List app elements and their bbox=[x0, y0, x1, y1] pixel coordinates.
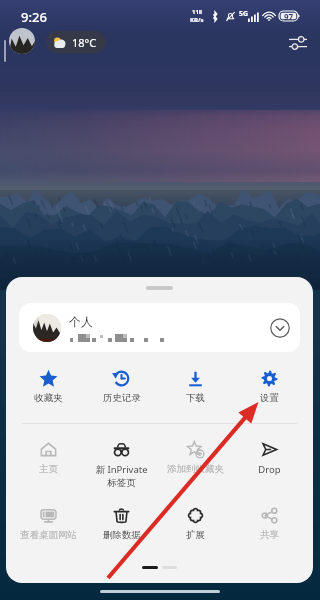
staticText: 收藏夹 bbox=[34, 392, 63, 404]
staticText: KB/s bbox=[190, 16, 204, 24]
button[interactable]: 个人 bbox=[19, 303, 300, 352]
staticText: 97 bbox=[284, 11, 294, 21]
button[interactable]: 新 InPrivate 标签页 bbox=[85, 441, 158, 489]
button[interactable]: 扩展 bbox=[158, 507, 232, 541]
staticText: 历史记录 bbox=[103, 392, 141, 404]
button[interactable]: Home settings bbox=[288, 33, 308, 53]
staticText: 扩展 bbox=[186, 529, 205, 541]
button[interactable]: 历史记录 bbox=[85, 370, 158, 404]
staticText: 设置 bbox=[260, 392, 279, 404]
staticText: 新 InPrivate 标签页 bbox=[95, 463, 148, 489]
button[interactable]: Expand account bbox=[267, 315, 293, 341]
staticText: 18°C bbox=[72, 35, 97, 50]
staticText: 删除数据 bbox=[103, 529, 141, 541]
button[interactable]: 主页 bbox=[12, 441, 85, 475]
button[interactable]: Drop bbox=[232, 441, 306, 476]
button[interactable]: Profile picture bbox=[9, 28, 35, 54]
staticText: 下载 bbox=[186, 392, 205, 404]
button[interactable]: 18°C bbox=[46, 31, 106, 53]
button[interactable]: 共享 bbox=[232, 507, 306, 541]
staticText: 主页 bbox=[39, 463, 58, 475]
button[interactable]: 下载 bbox=[158, 370, 232, 404]
staticText: 118 bbox=[192, 8, 203, 16]
staticText: 查看桌面网站 bbox=[20, 529, 77, 541]
staticText: Drop bbox=[258, 463, 281, 476]
button[interactable]: 删除数据 bbox=[85, 507, 158, 541]
button[interactable]: 收藏夹 bbox=[12, 370, 85, 404]
button[interactable]: 查看桌面网站 bbox=[12, 507, 85, 541]
staticText: 添加到收藏夹 bbox=[167, 463, 224, 475]
staticText: 5G bbox=[239, 9, 249, 19]
staticText: 9:26 bbox=[21, 8, 47, 26]
staticText: 共享 bbox=[260, 529, 279, 541]
button[interactable]: 设置 bbox=[232, 370, 306, 404]
button[interactable]: 添加到收藏夹 bbox=[158, 441, 232, 475]
staticText: 个人 bbox=[69, 314, 93, 329]
